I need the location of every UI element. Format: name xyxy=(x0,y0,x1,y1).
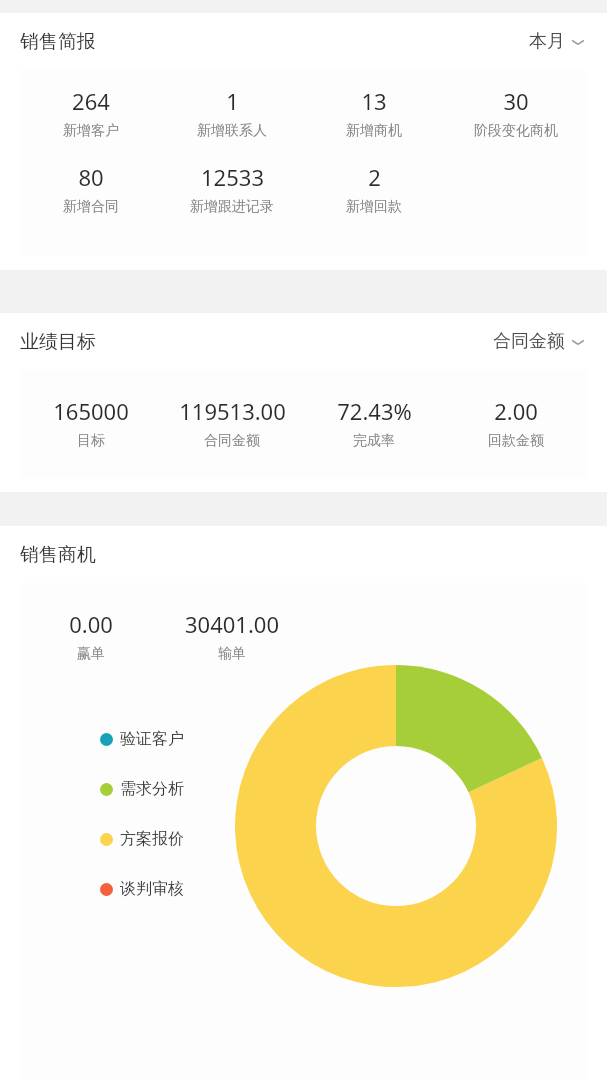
staticText: 新增商机 xyxy=(346,122,402,140)
staticText: 销售商机 xyxy=(20,543,96,567)
other: Expand xyxy=(571,37,585,47)
staticText: 回款金额 xyxy=(488,432,544,450)
staticText: 新增联系人 xyxy=(197,122,267,140)
staticText: 72.43% xyxy=(337,396,412,426)
staticText: 合同金额 xyxy=(204,432,260,450)
button[interactable]: 方案报价 xyxy=(100,825,184,853)
staticText: 新增合同 xyxy=(63,198,119,216)
staticText: 新增客户 xyxy=(63,122,119,140)
button[interactable]: 165000 xyxy=(20,370,587,478)
staticText: 2.00 xyxy=(494,396,538,426)
staticText: 完成率 xyxy=(353,432,395,450)
staticText: 80 xyxy=(78,162,104,192)
staticText: 13 xyxy=(361,86,387,116)
staticText: 12533 xyxy=(201,162,264,192)
staticText: 30401.00 xyxy=(185,609,279,639)
staticText: 方案报价 xyxy=(120,829,184,849)
button[interactable]: 本月 xyxy=(527,26,587,57)
staticText: 2 xyxy=(368,162,381,192)
staticText: 验证客户 xyxy=(120,729,184,749)
staticText: 目标 xyxy=(77,432,105,450)
button[interactable]: 验证客户 xyxy=(100,725,184,753)
staticText: 需求分析 xyxy=(120,779,184,799)
button[interactable]: 谈判审核 xyxy=(100,875,184,903)
staticText: 30 xyxy=(503,86,529,116)
staticText: 新增跟进记录 xyxy=(190,198,274,216)
button[interactable]: 需求分析 xyxy=(100,775,184,803)
staticText: 业绩目标 xyxy=(20,330,96,354)
staticText: 165000 xyxy=(53,396,129,426)
staticText: 新增回款 xyxy=(346,198,402,216)
staticText: 合同金额 xyxy=(493,330,565,353)
staticText: 本月 xyxy=(529,30,565,53)
staticText: 0.00 xyxy=(69,609,113,639)
staticText: 谈判审核 xyxy=(120,879,184,899)
staticText: 赢单 xyxy=(77,645,105,663)
staticText: 264 xyxy=(72,86,110,116)
button[interactable]: 264 xyxy=(20,70,587,256)
other: Expand xyxy=(571,337,585,347)
staticText: 阶段变化商机 xyxy=(474,122,558,140)
button[interactable]: 合同金额 xyxy=(491,326,587,357)
staticText: 销售简报 xyxy=(20,30,96,54)
staticText: 输单 xyxy=(218,645,246,663)
staticText: 1 xyxy=(226,86,239,116)
staticText: 119513.00 xyxy=(179,396,286,426)
